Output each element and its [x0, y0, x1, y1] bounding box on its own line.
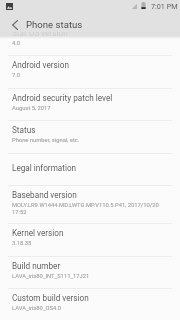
staticText: Status — [12, 125, 36, 135]
button[interactable]: Baseband version — [0, 185, 180, 223]
staticText: 3.18.35 — [12, 240, 32, 247]
staticText: LAVA_iris80_INT_S111_17J21 — [12, 273, 90, 280]
staticText: Kernel version — [12, 228, 64, 238]
staticText: 7:01 PM — [151, 2, 178, 10]
staticText: Phone number, signal, etc. — [12, 137, 80, 144]
button[interactable]: Custom build version — [0, 288, 180, 320]
staticText: Star OS version — [12, 28, 68, 38]
staticText: 7.0 — [12, 72, 21, 79]
staticText: Phone status — [26, 19, 83, 30]
staticText: August 5, 2017 — [12, 105, 51, 112]
staticText: Baseband version — [12, 190, 77, 200]
staticText: 4.0 — [12, 40, 21, 47]
button[interactable]: Legal information — [0, 153, 180, 186]
button[interactable]: Build number — [0, 256, 180, 289]
staticText: MOLY.LR9.W1444.MD.LWTG.MP.V110.5.P41, 20… — [12, 202, 159, 215]
button[interactable]: Android version — [0, 55, 180, 88]
button[interactable]: Status — [0, 120, 180, 153]
button[interactable]: Kernel version — [0, 223, 180, 256]
button[interactable]: Back — [4, 14, 26, 35]
staticText: Custom build version — [12, 293, 89, 303]
staticText: LAVA_iris80_OS4.0 — [12, 305, 61, 312]
staticText: Legal information — [12, 163, 77, 173]
staticText: Android version — [12, 60, 69, 70]
staticText: Android security patch level — [12, 93, 113, 103]
button[interactable]: Android security patch level — [0, 88, 180, 121]
staticText: Build number — [12, 261, 61, 271]
button[interactable]: Star OS version — [0, 23, 180, 56]
